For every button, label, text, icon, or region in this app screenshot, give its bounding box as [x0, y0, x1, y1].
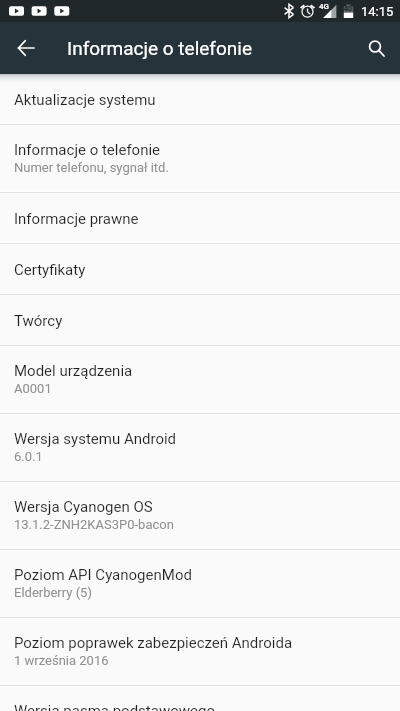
staticText: Poziom API CyanogenMod: [14, 566, 192, 584]
staticText: Poziom poprawek zabezpieczeń Androida: [14, 634, 293, 652]
staticText: 4G: [319, 2, 329, 11]
button[interactable]: Back: [0, 22, 52, 74]
staticText: Numer telefonu, sygnał itd.: [14, 160, 169, 175]
staticText: Aktualizacje systemu: [14, 91, 156, 109]
staticText: Model urządzenia: [14, 362, 133, 380]
staticText: 40: [344, 5, 352, 13]
staticText: Elderberry (5): [14, 585, 92, 600]
staticText: 1 września 2016: [14, 653, 109, 668]
button[interactable]: Poziom poprawek zabezpieczeń Androida: [0, 618, 400, 686]
button[interactable]: Search: [359, 32, 391, 64]
staticText: Wersja Cyanogen OS: [14, 498, 153, 516]
staticText: Certyfikaty: [14, 261, 86, 279]
staticText: 14:15: [361, 4, 394, 19]
staticText: Twórcy: [14, 312, 63, 330]
staticText: Informacje o telefonie: [14, 141, 161, 159]
staticText: 6.0.1: [14, 449, 43, 464]
button[interactable]: Model urządzenia: [0, 346, 400, 414]
staticText: Wersja systemu Android: [14, 430, 177, 448]
button[interactable]: Certyfikaty: [0, 244, 400, 295]
button[interactable]: Aktualizacje systemu: [0, 74, 400, 125]
staticText: Wersja pasma podstawowego: [14, 702, 215, 711]
staticText: A0001: [14, 381, 52, 396]
staticText: 13.1.2-ZNH2KAS3P0-bacon: [14, 517, 174, 532]
staticText: Informacje prawne: [14, 210, 139, 228]
button[interactable]: Informacje o telefonie: [0, 125, 400, 193]
button[interactable]: Twórcy: [0, 295, 400, 346]
button[interactable]: Poziom API CyanogenMod: [0, 550, 400, 618]
button[interactable]: Wersja Cyanogen OS: [0, 482, 400, 550]
button[interactable]: Informacje prawne: [0, 193, 400, 244]
button[interactable]: Wersja pasma podstawowego: [0, 686, 400, 711]
staticText: Informacje o telefonie: [67, 37, 252, 59]
button[interactable]: Wersja systemu Android: [0, 414, 400, 482]
